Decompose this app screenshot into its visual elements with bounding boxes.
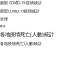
staticText: 確診 <box>0 24 6 28</box>
staticText: 各地疫情死亡(人數)統計 <box>0 31 54 38</box>
staticText: 全球 <box>0 17 8 21</box>
staticText: 新型 COVID-19 疫情統計 <box>0 0 42 5</box>
staticText: 各地疫情死亡(人數)統計 <box>0 41 42 46</box>
staticText: 新型COVID-19疫情統計 <box>0 8 40 14</box>
